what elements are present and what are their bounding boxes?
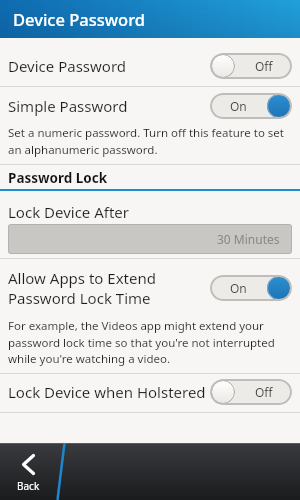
button[interactable]: Allow Apps to Extend Password Lock Time xyxy=(8,268,292,308)
staticText: Device Password xyxy=(8,56,210,76)
button[interactable]: Off xyxy=(210,53,292,79)
button[interactable]: Device Password xyxy=(8,53,292,79)
staticText: For example, the Videos app might extend… xyxy=(8,318,275,366)
button[interactable]: Off xyxy=(210,379,292,405)
button[interactable]: 30 Minutes xyxy=(8,224,292,254)
staticText: Back xyxy=(17,479,40,493)
staticText: Allow Apps to Extend Password Lock Time xyxy=(8,268,210,308)
button[interactable]: On xyxy=(210,93,292,119)
button[interactable]: Lock Device when Holstered xyxy=(8,379,292,405)
staticText: Lock Device when Holstered xyxy=(8,382,210,402)
staticText: Lock Device After xyxy=(8,202,130,222)
button[interactable]: On xyxy=(210,275,292,301)
staticText: 30 Minutes xyxy=(217,231,280,247)
button[interactable]: Simple Password xyxy=(8,93,292,119)
staticText: Simple Password xyxy=(8,96,210,116)
staticText: Device Password xyxy=(13,8,146,30)
staticText: Off xyxy=(255,58,273,74)
staticText: On xyxy=(230,98,247,114)
staticText: Password Lock xyxy=(8,169,108,187)
staticText: Off xyxy=(255,384,273,400)
staticText: Set a numeric password. Turn off this fe… xyxy=(8,125,285,157)
staticText: On xyxy=(230,280,247,296)
button[interactable]: Back xyxy=(0,443,56,500)
